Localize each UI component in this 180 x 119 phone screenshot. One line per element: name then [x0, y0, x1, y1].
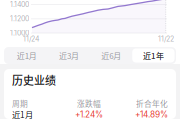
- button[interactable]: 近1月: [5, 48, 48, 62]
- staticText: 近6月: [101, 50, 121, 61]
- staticText: 涨跌幅: [77, 98, 101, 109]
- button[interactable]: 近3月: [48, 48, 90, 62]
- staticText: 1.1200: [10, 15, 29, 23]
- button[interactable]: 近6月: [90, 48, 132, 62]
- staticText: 历史业绩: [12, 72, 56, 88]
- staticText: 近1年: [143, 50, 164, 61]
- staticText: 11/24: [23, 35, 39, 43]
- staticText: 近1月: [17, 50, 37, 61]
- staticText: 11/22: [158, 35, 174, 43]
- staticText: 周期: [12, 98, 28, 109]
- staticText: +1.24%: [75, 109, 103, 119]
- staticText: 1.1400: [10, 0, 29, 9]
- staticText: 近1月: [12, 108, 33, 119]
- button[interactable]: 近1年: [132, 48, 174, 62]
- staticText: 1.1000: [10, 29, 29, 37]
- staticText: 近3月: [59, 50, 79, 61]
- staticText: 折合年化: [136, 98, 168, 109]
- staticText: +14.89%: [135, 109, 168, 119]
